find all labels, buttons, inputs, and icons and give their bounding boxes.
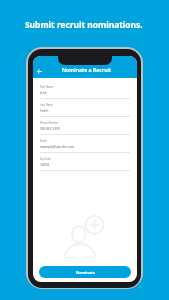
button[interactable]: Zip Code [33,153,137,171]
staticText: Email [40,139,47,143]
staticText: John [40,91,47,95]
staticText: 555-867-5309 [40,127,60,131]
staticText: Zip Code [40,157,51,161]
button[interactable]: First Name [33,81,137,99]
button[interactable]: Phone Number [33,117,137,135]
staticText: Submit recruit nominations. [25,19,143,30]
button[interactable]: Back [34,66,45,77]
staticText: example@sub.efsc.com [40,145,75,149]
button[interactable]: Nominate [39,266,131,278]
staticText: 33004 [40,163,49,167]
button[interactable]: Last Name [33,99,137,117]
staticText: Last Name [40,103,53,107]
staticText: Phone Number [40,121,59,125]
staticText: First Name [40,85,54,89]
staticText: Nominate a Recruit [62,66,112,73]
staticText: Smith [40,109,49,113]
staticText: Nominate [76,270,95,275]
button[interactable]: Email [33,135,137,153]
